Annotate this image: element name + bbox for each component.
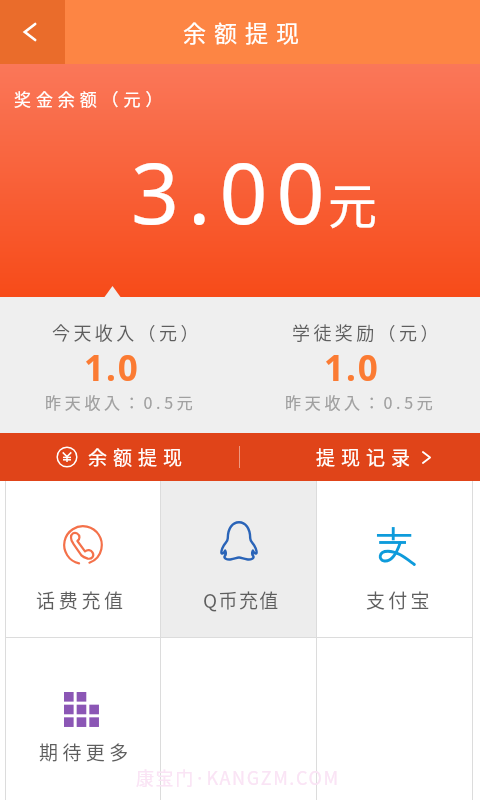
staticText: 学徒奖励（元）	[292, 319, 442, 345]
staticText: 昨天收入：0.5元	[285, 390, 437, 413]
staticText: 今天收入（元）	[52, 319, 202, 345]
staticText: 昨天收入：0.5元	[45, 390, 197, 413]
staticText: 1.0	[84, 344, 140, 392]
button[interactable]: 余额提现	[0, 433, 240, 481]
staticText: 支付宝	[366, 586, 433, 614]
button[interactable]: 话费充值	[6, 481, 160, 637]
staticText: 3.00	[131, 134, 334, 248]
staticText: 元	[328, 167, 378, 238]
staticText: 期待更多	[39, 738, 133, 766]
staticText: 提现记录	[316, 443, 417, 471]
staticText: 奖金余额（元）	[14, 86, 168, 111]
staticText: 康宝门·KANGZM.COM	[136, 764, 340, 790]
button[interactable]: Q币充值	[161, 481, 316, 637]
button[interactable]: 支付宝	[317, 481, 472, 637]
staticText: 话费充值	[36, 586, 127, 614]
staticText: Q币充值	[203, 586, 280, 614]
staticText: 余额提现	[88, 443, 189, 471]
staticText: 1.0	[324, 344, 380, 392]
button[interactable]: 提现记录	[240, 433, 480, 481]
button[interactable]: Back	[0, 0, 65, 64]
button[interactable]: 期待更多	[6, 638, 160, 800]
staticText: 余额提现	[179, 15, 303, 48]
